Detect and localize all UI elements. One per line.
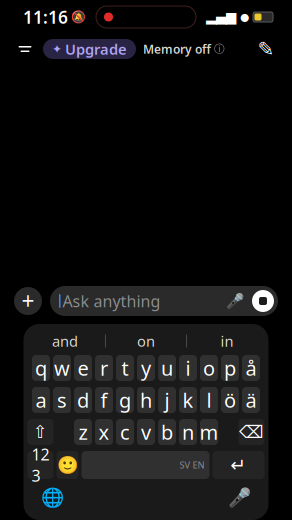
staticText: ▂▄▆ [206, 9, 236, 24]
staticText: o [203, 355, 215, 381]
button[interactable]: o [200, 355, 218, 381]
staticText: a [35, 387, 46, 413]
button[interactable]: Sidebar [14, 38, 36, 60]
button[interactable]: u [158, 355, 176, 381]
staticText: k [182, 387, 193, 413]
staticText: 🎤 [226, 293, 244, 309]
staticText: f [100, 387, 107, 413]
staticText: l [206, 387, 211, 413]
staticText: i [185, 355, 190, 381]
staticText: å [245, 355, 256, 381]
button[interactable]: j [158, 387, 176, 413]
staticText: q [35, 355, 47, 381]
staticText: z [78, 419, 87, 445]
button[interactable]: ä [242, 387, 260, 413]
staticText: c [120, 419, 130, 445]
button[interactable]: on [106, 330, 186, 352]
button[interactable]: Ask anything [50, 286, 278, 316]
button[interactable]: Memory off [143, 41, 225, 57]
button[interactable]: d [74, 387, 92, 413]
staticText: 🎤 [228, 487, 251, 509]
staticText: ⇧ [33, 422, 48, 442]
staticText: SV EN [179, 459, 204, 471]
staticText: d [77, 387, 89, 413]
staticText: g [119, 387, 131, 413]
button[interactable]: ö [221, 387, 239, 413]
button[interactable]: b [158, 419, 176, 445]
button[interactable]: New chat [254, 37, 278, 61]
button[interactable]: e [74, 355, 92, 381]
button[interactable]: Shift [27, 419, 53, 445]
staticText: on [137, 331, 155, 351]
staticText: ● [240, 11, 249, 23]
button[interactable]: x [95, 419, 113, 445]
staticText: u [161, 355, 173, 381]
staticText: Memory off [143, 41, 211, 57]
staticText: 🌐 [41, 487, 64, 509]
button[interactable]: p [221, 355, 239, 381]
button[interactable]: Next keyboard [37, 483, 67, 513]
button[interactable]: i [179, 355, 197, 381]
staticText: y [141, 355, 151, 381]
staticText: ⓘ [214, 42, 225, 55]
staticText: ö [224, 387, 236, 413]
staticText: and [52, 331, 78, 351]
button[interactable]: 123 [27, 451, 53, 479]
button[interactable]: f [95, 387, 113, 413]
button[interactable]: a [32, 387, 50, 413]
button[interactable]: and [25, 330, 105, 352]
button[interactable]: Emoji [56, 451, 78, 479]
button[interactable]: Delete [238, 419, 264, 445]
staticText: r [100, 355, 108, 381]
button[interactable]: Dictation [224, 483, 254, 513]
staticText: 11:16 [23, 5, 68, 28]
staticText: + [21, 286, 34, 316]
staticText: v [141, 419, 151, 445]
staticText: ↵ [230, 454, 246, 476]
button[interactable]: q [32, 355, 50, 381]
staticText: Ask anything [62, 290, 160, 312]
staticText: s [57, 387, 67, 413]
staticText: x [98, 419, 109, 445]
staticText: m [199, 419, 218, 445]
staticText: ✎ [257, 38, 274, 60]
button[interactable]: Return [212, 451, 264, 479]
staticText: in [220, 331, 233, 351]
staticText: t [121, 355, 128, 381]
button[interactable]: Space [81, 451, 209, 479]
staticText: 🔕 [71, 10, 86, 24]
staticText: 123 [31, 444, 49, 486]
button[interactable]: å [242, 355, 260, 381]
button[interactable]: in [187, 330, 267, 352]
staticText: b [161, 419, 173, 445]
staticText: ⌫ [239, 422, 264, 442]
staticText: p [224, 355, 236, 381]
button[interactable]: r [95, 355, 113, 381]
button[interactable]: l [200, 387, 218, 413]
button[interactable]: s [53, 387, 71, 413]
staticText: ä [245, 387, 256, 413]
button[interactable]: k [179, 387, 197, 413]
button[interactable]: z [74, 419, 92, 445]
button[interactable]: c [116, 419, 134, 445]
button[interactable]: t [116, 355, 134, 381]
staticText: ✦ [52, 42, 62, 56]
button[interactable]: w [53, 355, 71, 381]
button[interactable]: n [179, 419, 197, 445]
staticText: e [77, 355, 88, 381]
staticText: h [140, 387, 152, 413]
staticText: Upgrade [65, 39, 127, 59]
staticText: 🙂 [56, 455, 78, 475]
staticText: w [54, 355, 70, 381]
button[interactable]: m [200, 419, 218, 445]
button[interactable]: h [137, 387, 155, 413]
button[interactable]: ✦ [43, 39, 136, 59]
button[interactable]: v [137, 419, 155, 445]
staticText: j [164, 387, 169, 413]
staticText: n [182, 419, 194, 445]
button[interactable]: Add attachment [14, 287, 42, 315]
button[interactable]: g [116, 387, 134, 413]
button[interactable]: y [137, 355, 155, 381]
